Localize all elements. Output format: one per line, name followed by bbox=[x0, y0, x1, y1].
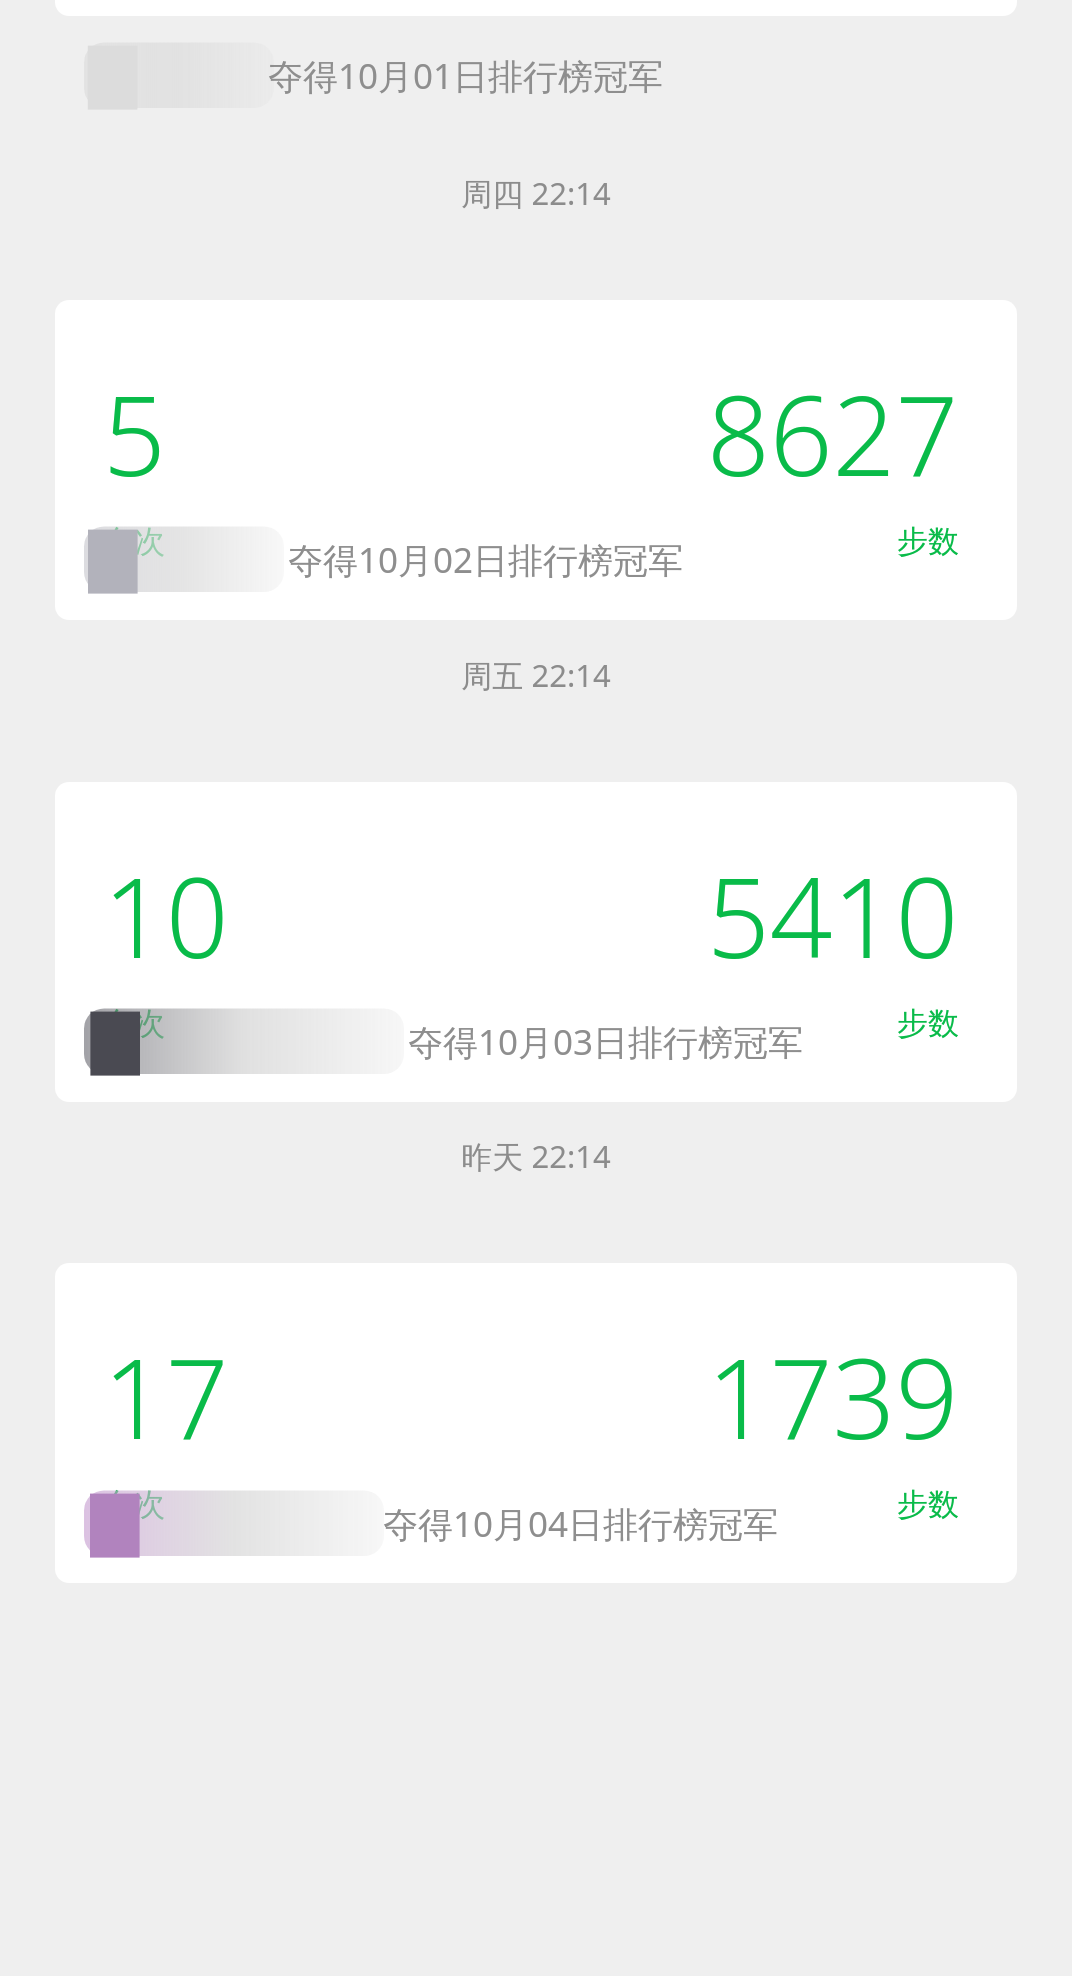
staticText: 名次 bbox=[103, 522, 165, 561]
button[interactable]: 夺得10月04日排行榜冠军 bbox=[0, 1476, 1072, 1572]
staticText: 夺得10月01日排行榜冠军 bbox=[268, 52, 664, 100]
staticText: 周五 22:14 bbox=[461, 654, 611, 696]
staticText: 昨天 22:14 bbox=[461, 1135, 611, 1177]
staticText: 名次 bbox=[103, 1004, 165, 1043]
button[interactable]: 夺得10月02日排行榜冠军 bbox=[0, 512, 1072, 608]
staticText: 步数 bbox=[897, 522, 959, 561]
staticText: 步数 bbox=[897, 1004, 959, 1043]
staticText: 8627 bbox=[707, 358, 959, 508]
staticText: 周四 22:14 bbox=[461, 172, 611, 214]
button[interactable]: 夺得10月01日排行榜冠军 bbox=[0, 28, 1072, 124]
staticText: 5 bbox=[103, 358, 166, 508]
button[interactable]: 5 bbox=[55, 300, 1017, 620]
staticText: 5410 bbox=[707, 840, 959, 990]
button[interactable]: 夺得10月03日排行榜冠军 bbox=[0, 994, 1072, 1090]
button[interactable]: 17 bbox=[55, 1263, 1017, 1583]
staticText: 夺得10月02日排行榜冠军 bbox=[288, 536, 684, 584]
staticText: 夺得10月03日排行榜冠军 bbox=[408, 1018, 804, 1066]
staticText: 步数 bbox=[897, 1485, 959, 1524]
staticText: 1739 bbox=[707, 1321, 959, 1471]
button[interactable]: 10 bbox=[55, 782, 1017, 1102]
staticText: 名次 bbox=[103, 1485, 165, 1524]
staticText: 10 bbox=[103, 840, 229, 990]
staticText: 夺得10月04日排行榜冠军 bbox=[383, 1500, 779, 1548]
staticText: 17 bbox=[103, 1321, 229, 1471]
